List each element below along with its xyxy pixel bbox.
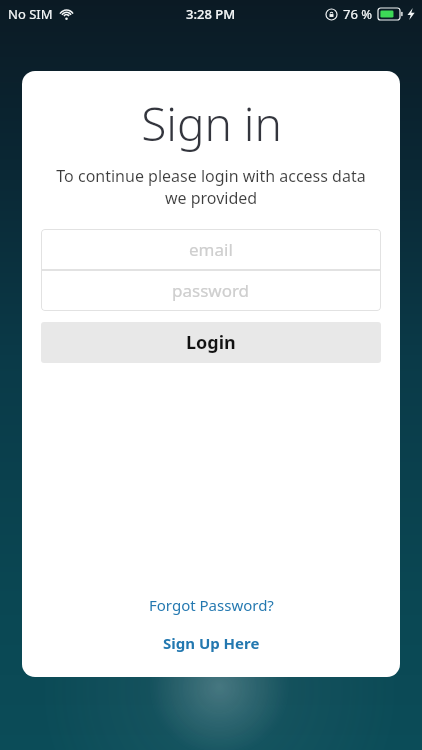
staticText: email	[189, 238, 233, 261]
button[interactable]: password	[41, 270, 381, 311]
staticText: 76 %	[343, 5, 373, 23]
staticText: Forgot Password?	[149, 595, 274, 615]
staticText: To continue please login with access dat…	[32, 165, 390, 209]
button[interactable]: Sign Up Here	[149, 628, 274, 658]
staticText: Sign in	[141, 92, 282, 155]
staticText: password	[172, 279, 250, 302]
button[interactable]: Forgot Password?	[135, 590, 288, 620]
staticText: 3:28 PM	[186, 5, 236, 23]
button[interactable]: email	[41, 229, 381, 270]
staticText: Login	[186, 330, 236, 355]
staticText: No SIM	[8, 5, 53, 23]
button[interactable]: Login	[41, 322, 381, 363]
staticText: Sign Up Here	[163, 633, 260, 653]
